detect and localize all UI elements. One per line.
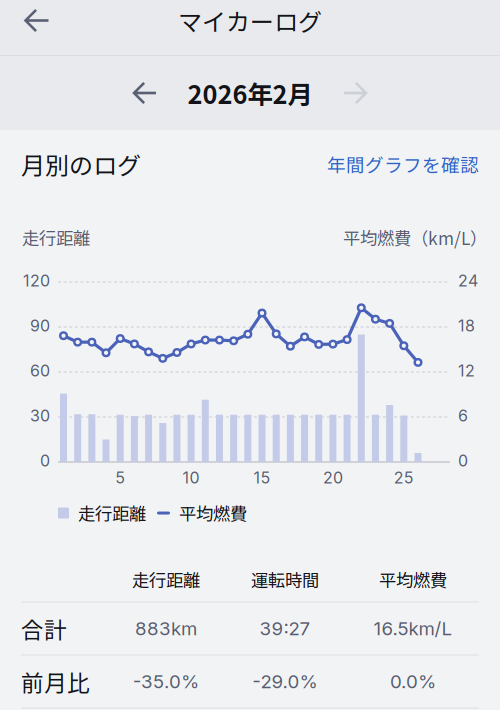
staticText: -29.0% bbox=[252, 670, 317, 693]
button[interactable]: Previous month bbox=[112, 56, 178, 130]
staticText: 平均燃費 bbox=[179, 500, 247, 526]
staticText: 0.0% bbox=[390, 670, 436, 693]
staticText: 合計 bbox=[21, 612, 67, 645]
staticText: 年間グラフを確認 bbox=[327, 150, 479, 177]
staticText: 10 bbox=[183, 468, 200, 487]
staticText: 5 bbox=[115, 468, 125, 487]
staticText: 120 bbox=[23, 271, 50, 290]
staticText: 16.5km/L bbox=[373, 617, 452, 640]
staticText: 60 bbox=[30, 361, 50, 380]
staticText: 12 bbox=[458, 361, 475, 380]
staticText: 走行距離 bbox=[78, 500, 146, 526]
staticText: 15 bbox=[253, 468, 270, 487]
staticText: 前月比 bbox=[21, 665, 90, 698]
staticText: 90 bbox=[30, 316, 50, 335]
staticText: 25 bbox=[394, 468, 414, 487]
staticText: 0 bbox=[40, 451, 50, 470]
staticText: 平均燃費（km/L） bbox=[343, 225, 487, 250]
staticText: 18 bbox=[458, 316, 475, 335]
staticText: 24 bbox=[458, 271, 478, 290]
staticText: 走行距離 bbox=[22, 225, 90, 250]
button[interactable]: 年間グラフを確認 bbox=[327, 150, 479, 177]
staticText: 走行距離 bbox=[132, 567, 200, 592]
button[interactable]: Next month bbox=[322, 56, 388, 130]
staticText: 平均燃費 bbox=[379, 567, 447, 592]
staticText: マイカーログ bbox=[178, 3, 322, 38]
staticText: 運転時間 bbox=[251, 567, 319, 592]
staticText: 2026年2月 bbox=[187, 75, 312, 111]
staticText: 0 bbox=[458, 451, 468, 470]
staticText: -35.0% bbox=[133, 670, 199, 693]
staticText: 883km bbox=[135, 617, 197, 640]
staticText: 30 bbox=[30, 406, 50, 425]
staticText: 6 bbox=[458, 406, 468, 425]
button[interactable]: Back bbox=[0, 0, 74, 41]
staticText: 20 bbox=[323, 468, 343, 487]
staticText: 月別のログ bbox=[21, 147, 141, 181]
staticText: 39:27 bbox=[259, 617, 310, 640]
